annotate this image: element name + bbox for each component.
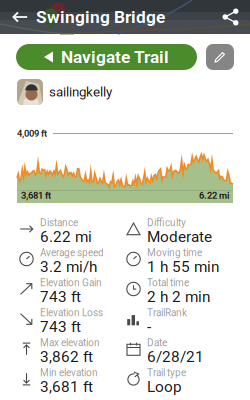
staticText: TrailRank (147, 308, 187, 317)
button[interactable]: Navigate Trail (16, 44, 197, 70)
staticText: 3,862 ft (40, 349, 93, 364)
staticText: 4,009 ft (17, 129, 47, 138)
staticText: 6/28/21 (147, 349, 204, 364)
staticText: 3.2 mi/h (40, 259, 97, 274)
staticText: Moving time (147, 248, 202, 257)
staticText: Date (147, 338, 167, 347)
staticText: 2 h 2 min (147, 289, 210, 304)
staticText: 743 ft (40, 319, 81, 334)
staticText: 6.22 mi (40, 229, 92, 244)
staticText: Average speed (40, 248, 104, 257)
staticText: 1 h 55 min (147, 259, 219, 274)
button[interactable]: Share (217, 4, 245, 30)
staticText: sailingkelly (49, 86, 112, 98)
staticText: Navigate Trail (61, 49, 169, 65)
staticText: Moderate (147, 229, 212, 244)
button[interactable]: Back (6, 4, 34, 30)
staticText: Loop (147, 379, 182, 394)
staticText: 3,681 ft (40, 379, 93, 394)
staticText: Total time (147, 278, 189, 287)
staticText: Elevation Gain (40, 278, 102, 287)
staticText: Min elevation (40, 368, 98, 377)
staticText: Max elevation (40, 338, 100, 347)
staticText: 743 ft (40, 289, 81, 304)
button[interactable]: Edit (206, 44, 234, 70)
staticText: 6.22 mi (199, 191, 229, 200)
staticText: Difficulty (147, 218, 186, 227)
staticText: Trail type (147, 368, 186, 377)
staticText: Swinging Bridge (36, 9, 165, 25)
staticText: - (147, 319, 151, 334)
staticText: Distance (40, 218, 78, 227)
staticText: 3,681 ft (21, 191, 51, 200)
staticText: Elevation Loss (40, 308, 103, 317)
